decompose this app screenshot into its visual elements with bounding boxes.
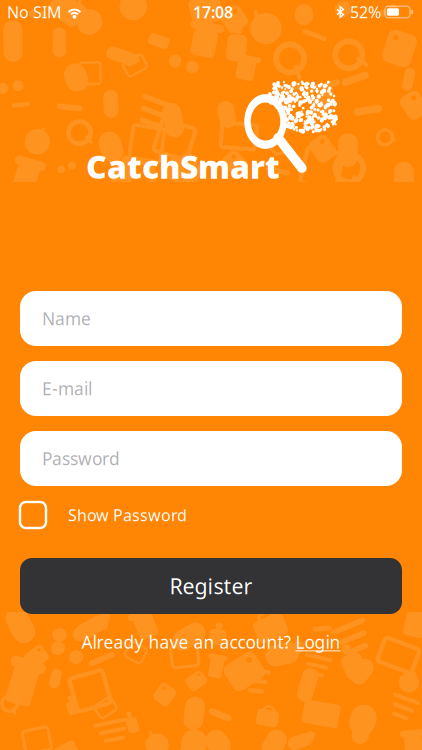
staticText: Show Password: [68, 504, 187, 526]
staticText: Login: [295, 630, 340, 653]
staticText: Password: [42, 447, 120, 470]
staticText: Name: [42, 307, 91, 330]
button[interactable]: Already have an account?: [0, 629, 422, 655]
staticText: No SIM: [7, 1, 62, 23]
staticText: Already have an account?: [81, 630, 291, 653]
button[interactable]: Show Password: [20, 498, 250, 532]
staticText: CatchSmart: [86, 145, 280, 187]
staticText: Register: [169, 572, 252, 600]
button[interactable]: Register: [20, 558, 402, 614]
staticText: E-mail: [42, 377, 92, 400]
staticText: 52%: [350, 1, 381, 23]
staticText: 17:08: [193, 1, 233, 23]
